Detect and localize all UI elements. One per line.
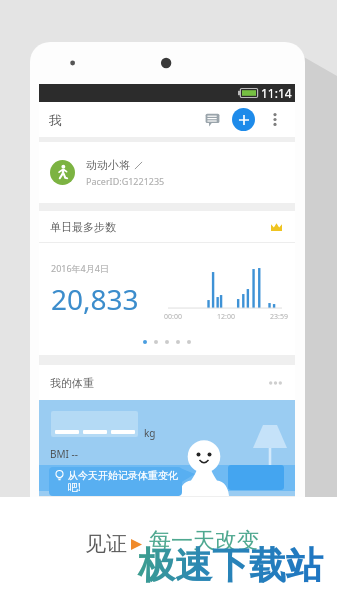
staticText: BMI -- — [50, 447, 78, 461]
staticText: 见证 — [85, 531, 127, 557]
staticText: 极速下载站 — [138, 542, 323, 589]
staticText: 我的体重 — [50, 376, 94, 390]
staticText: 我 — [49, 112, 62, 128]
button[interactable]: More options — [255, 102, 294, 137]
button[interactable]: 动动小将 — [39, 142, 295, 203]
staticText: 00:00 — [164, 312, 182, 322]
staticText: 11:14 — [261, 85, 292, 101]
staticText: kg — [144, 426, 156, 440]
staticText: 单日最多步数 — [50, 220, 116, 234]
button[interactable]: Add — [232, 108, 255, 131]
staticText: 每一天改变 — [149, 527, 259, 555]
button[interactable]: Messages — [192, 102, 232, 137]
staticText: 20,833 — [51, 280, 139, 318]
button[interactable]: 我的体重 — [39, 365, 295, 400]
staticText: 2016年4月4日 — [51, 262, 109, 274]
staticText: 从今天开始记录体重变化吧! — [68, 469, 178, 494]
staticText: PacerID:G1221235 — [86, 175, 165, 187]
staticText: 动动小将 — [86, 158, 130, 172]
button[interactable]: 单日最多步数 — [39, 211, 295, 242]
staticText: 23:59 — [270, 312, 288, 322]
button[interactable]: kg — [39, 400, 295, 496]
staticText: 12:00 — [217, 312, 235, 322]
